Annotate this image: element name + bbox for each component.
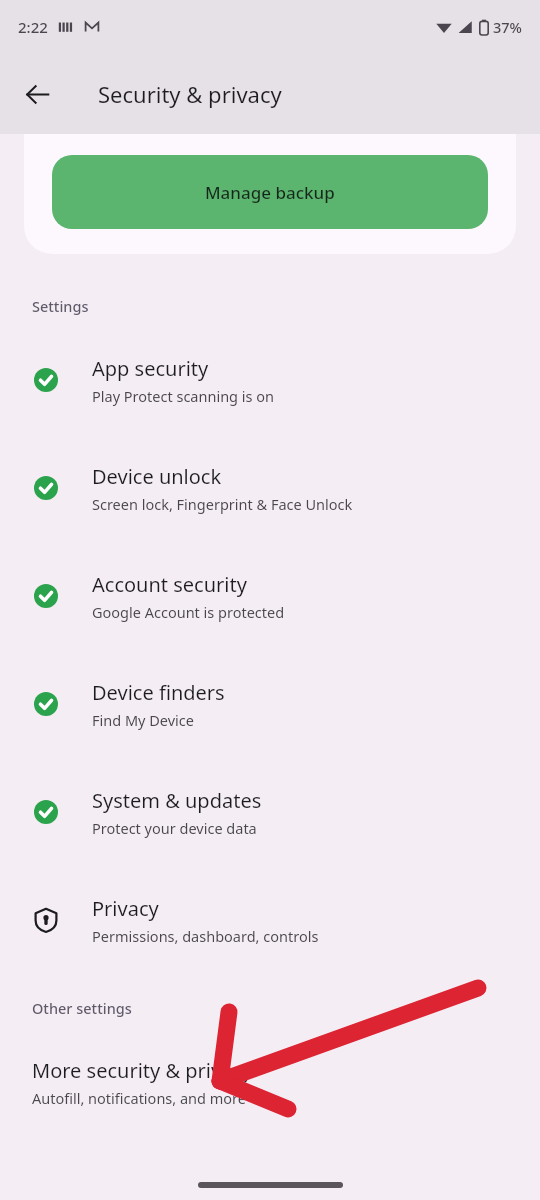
staticText: Protect your device data [92,818,257,838]
staticText: Device unlock [92,463,222,490]
staticText: Device finders [92,679,225,706]
staticText: Play Protect scanning is on [92,386,274,406]
button[interactable]: System & updates [0,776,540,848]
staticText: 2:22 [18,17,48,37]
staticText: Manage backup [205,181,335,204]
staticText: App security [92,355,209,382]
staticText: Screen lock, Fingerprint & Face Unlock [92,494,353,514]
staticText: Privacy [92,895,159,922]
staticText: Account security [92,571,247,598]
staticText: 37% [493,17,522,37]
staticText: Security & privacy [98,79,282,109]
staticText: Autofill, notifications, and more [32,1088,246,1108]
button[interactable]: Back [13,70,61,118]
staticText: More security & privacy [32,1057,253,1084]
button[interactable]: Privacy [0,884,540,956]
button[interactable]: Device unlock [0,452,540,524]
staticText: Settings [32,296,89,316]
staticText: Permissions, dashboard, controls [92,926,319,946]
staticText: System & updates [92,787,262,814]
button[interactable]: Manage backup [52,155,488,229]
button[interactable]: App security [0,344,540,416]
button[interactable]: Device finders [0,668,540,740]
staticText: Google Account is protected [92,602,285,622]
staticText: Other settings [32,998,132,1018]
button[interactable]: Account security [0,560,540,632]
button[interactable]: More security & privacy [0,1046,540,1118]
staticText: Find My Device [92,710,194,730]
